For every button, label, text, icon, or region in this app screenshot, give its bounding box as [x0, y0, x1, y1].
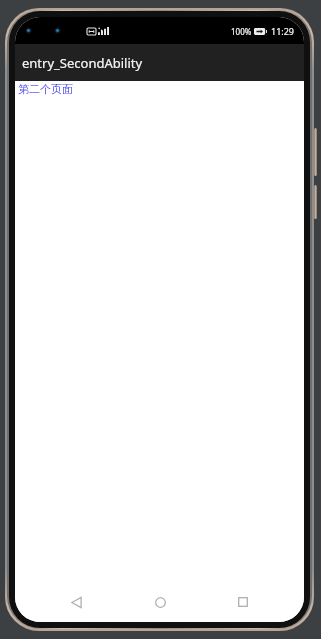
- other: Volume: [314, 128, 317, 176]
- button[interactable]: Home: [138, 582, 182, 622]
- other: Power: [314, 185, 317, 219]
- staticText: 11:29: [271, 25, 295, 37]
- staticText: 100%: [231, 26, 252, 37]
- button[interactable]: Back: [54, 582, 98, 622]
- staticText: 第二个页面: [18, 82, 73, 96]
- staticText: entry_SecondAbility: [22, 54, 143, 72]
- button[interactable]: Recent apps: [221, 582, 265, 622]
